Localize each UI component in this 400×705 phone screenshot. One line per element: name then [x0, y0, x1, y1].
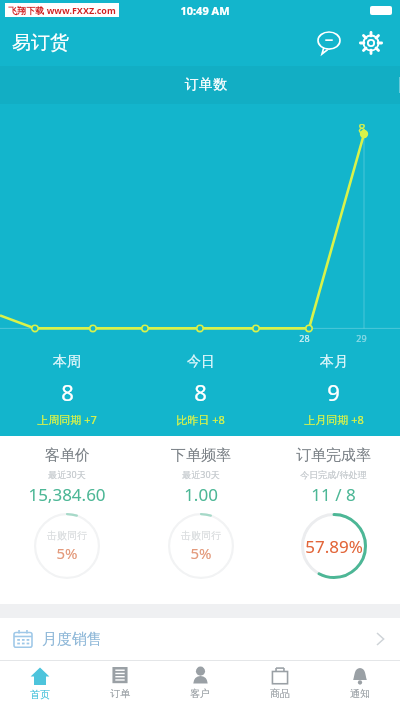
button[interactable]: 客户: [160, 661, 240, 705]
staticText: 5%: [56, 543, 78, 563]
staticText: 8: [194, 377, 207, 407]
staticText: 易订货: [12, 31, 69, 55]
staticText: 9: [327, 377, 340, 407]
button[interactable]: 客单价: [0, 436, 134, 604]
staticText: 订单: [110, 687, 130, 700]
staticText: 11 / 8: [311, 483, 356, 506]
staticText: 最近30天: [48, 468, 86, 480]
staticText: 通知: [350, 687, 370, 700]
staticText: 客户: [190, 687, 210, 700]
staticText: 5%: [190, 543, 212, 563]
button[interactable]: 本月: [267, 344, 400, 436]
staticText: 订单完成率: [296, 446, 371, 465]
button[interactable]: 通知: [320, 661, 400, 705]
staticText: 客单价: [45, 446, 90, 465]
staticText: 比昨日 +8: [176, 412, 225, 427]
staticText: 上周同期 +7: [37, 412, 97, 427]
staticText: 本月: [320, 353, 348, 371]
staticText: 8: [61, 377, 74, 407]
staticText: 击败同行: [181, 529, 221, 542]
button[interactable]: Settings: [354, 26, 388, 60]
staticText: 今日: [187, 353, 215, 371]
staticText: 8: [358, 119, 366, 137]
button[interactable]: 下单频率: [134, 436, 267, 604]
button[interactable]: 订单数: [12, 66, 400, 104]
staticText: 10:49 AM: [180, 3, 230, 18]
button[interactable]: Messages: [312, 26, 346, 60]
staticText: 1.00: [184, 483, 218, 506]
button[interactable]: 商品: [240, 661, 320, 705]
staticText: 28: [299, 332, 310, 344]
staticText: 月度销售: [42, 630, 102, 649]
button[interactable]: 今日: [134, 344, 267, 436]
button[interactable]: 订单完成率: [267, 436, 400, 604]
staticText: 击败同行: [47, 529, 87, 542]
staticText: 最近30天: [182, 468, 220, 480]
staticText: 57.89%: [305, 535, 363, 558]
staticText: 飞翔下载 www.FXXZ.com: [8, 4, 116, 16]
button[interactable]: 首页: [0, 661, 80, 705]
button[interactable]: 月度销售: [0, 618, 400, 660]
staticText: 今日完成/待处理: [300, 468, 367, 480]
staticText: 29: [356, 332, 367, 344]
staticText: 本周: [53, 353, 81, 371]
staticText: 商品: [270, 687, 290, 700]
button[interactable]: 本周: [0, 344, 134, 436]
staticText: 首页: [30, 688, 50, 701]
staticText: 15,384.60: [28, 483, 106, 506]
button[interactable]: 订单: [80, 661, 160, 705]
staticText: 订单数: [185, 76, 227, 94]
staticText: 上月同期 +8: [304, 412, 364, 427]
staticText: 下单频率: [171, 446, 231, 465]
